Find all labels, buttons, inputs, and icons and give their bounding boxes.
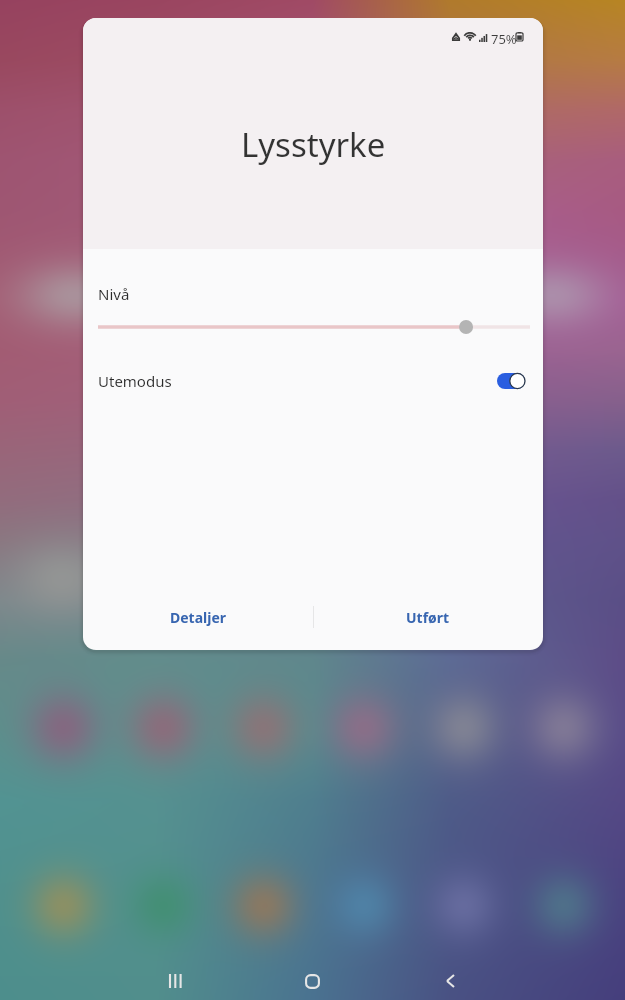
button[interactable]: Brightness level slider (98, 316, 530, 338)
button[interactable]: Back (426, 957, 474, 1000)
staticText: Utført (406, 608, 450, 627)
button[interactable]: Detaljer (83, 584, 313, 650)
staticText: Lysstyrke (241, 122, 386, 167)
staticText: 75% (491, 30, 517, 48)
button[interactable]: Utført (313, 584, 543, 650)
staticText: Nivå (98, 284, 130, 304)
staticText: Detaljer (170, 608, 227, 627)
staticText: Utemodus (98, 371, 172, 391)
button[interactable]: Recents (151, 957, 199, 1000)
button[interactable]: Home (288, 957, 336, 1000)
button[interactable]: Utemodus toggle (494, 370, 530, 392)
